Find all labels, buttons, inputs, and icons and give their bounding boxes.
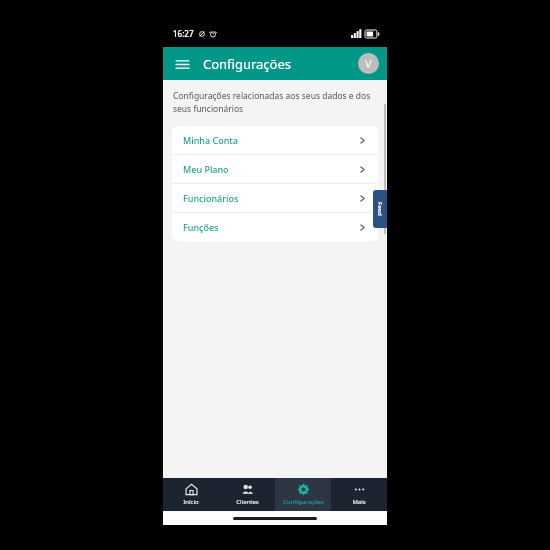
button[interactable]: Funcionários xyxy=(172,184,378,212)
staticText: Início xyxy=(183,498,199,506)
staticText: Feedback xyxy=(376,202,384,216)
staticText: Configurações xyxy=(203,55,292,73)
staticText: 16:27 xyxy=(173,28,194,39)
button[interactable]: Funções xyxy=(172,213,378,241)
staticText: Configurações xyxy=(283,498,324,506)
button[interactable]: Feedback xyxy=(373,190,387,228)
staticText: Clientes xyxy=(236,498,259,506)
staticText: V xyxy=(365,56,372,71)
button[interactable]: Menu xyxy=(171,53,193,75)
staticText: Mais xyxy=(352,498,366,506)
staticText: Meu Plano xyxy=(183,163,229,175)
button[interactable]: Perfil xyxy=(358,53,379,74)
staticText: Funcionários xyxy=(183,192,239,204)
staticText: Minha Conta xyxy=(183,134,238,146)
staticText: Funções xyxy=(183,221,219,233)
button[interactable]: Configurações xyxy=(275,478,331,511)
button[interactable]: Início xyxy=(163,478,219,511)
button[interactable]: Clientes xyxy=(219,478,275,511)
button[interactable]: Minha Conta xyxy=(172,126,378,154)
staticText: Configurações relacionadas aos seus dado… xyxy=(173,90,373,115)
button[interactable]: Meu Plano xyxy=(172,155,378,183)
button[interactable]: Mais xyxy=(331,478,387,511)
